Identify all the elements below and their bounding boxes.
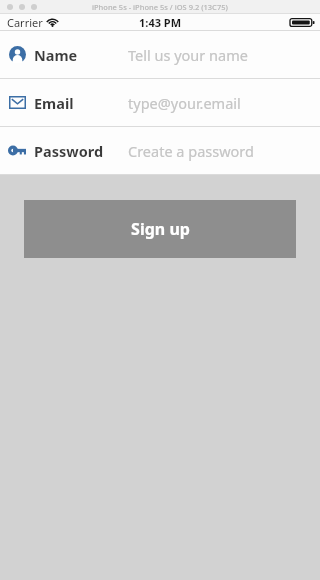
staticText: Name bbox=[34, 45, 78, 65]
other: Name bbox=[9, 46, 26, 63]
staticText: 1:43 PM bbox=[139, 15, 182, 30]
staticText: Email bbox=[34, 93, 74, 113]
button[interactable]: Password bbox=[0, 127, 320, 174]
staticText: Carrier bbox=[7, 15, 43, 30]
staticText: iPhone 5s - iPhone 5s / iOS 9.2 (13C75) bbox=[92, 2, 228, 12]
other: Email bbox=[9, 96, 26, 109]
staticText: Password bbox=[34, 141, 104, 161]
staticText: Sign up bbox=[131, 218, 190, 240]
button[interactable]: Sign up bbox=[24, 200, 296, 258]
staticText: Tell us your name bbox=[128, 45, 248, 65]
button[interactable]: Name bbox=[0, 31, 320, 78]
button[interactable]: Email bbox=[0, 79, 320, 126]
staticText: type@your.email bbox=[128, 93, 241, 113]
staticText: Create a password bbox=[128, 141, 254, 161]
other: Password bbox=[8, 145, 26, 156]
